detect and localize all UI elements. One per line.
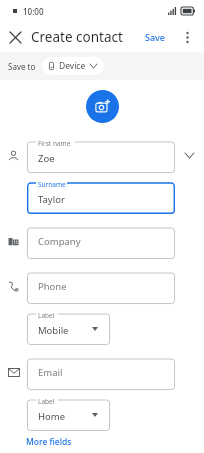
button[interactable]: Save (139, 25, 172, 49)
button[interactable]: Expand name fields (175, 137, 204, 173)
button[interactable]: Add photo (86, 90, 119, 123)
staticText: Create contact (31, 28, 123, 46)
button[interactable]: Close (0, 22, 30, 52)
staticText: Phone (38, 280, 67, 293)
staticText: Save (145, 31, 166, 43)
button[interactable]: More fields (22, 432, 76, 452)
staticText: Email (38, 366, 63, 379)
button[interactable]: Surname (27, 178, 175, 214)
staticText: First name (38, 139, 71, 148)
button[interactable]: Company (27, 223, 175, 259)
staticText: Company (38, 235, 81, 248)
staticText: Surname (38, 180, 66, 189)
staticText: Device (59, 60, 86, 72)
button[interactable]: Label (27, 395, 110, 431)
staticText: Label (38, 311, 55, 320)
button[interactable]: Label (27, 309, 110, 345)
button[interactable]: First name (27, 137, 175, 173)
staticText: Home (38, 410, 66, 423)
staticText: Label (38, 397, 55, 406)
button[interactable]: Device (42, 57, 104, 75)
staticText: More fields (26, 436, 72, 448)
button[interactable]: More options (174, 24, 200, 50)
button[interactable]: Phone (27, 268, 175, 304)
staticText: Zoe (38, 152, 55, 165)
button[interactable]: Email (27, 354, 175, 390)
staticText: Taylor (38, 193, 65, 206)
staticText: 10:00 (23, 6, 44, 17)
staticText: Mobile (38, 324, 69, 337)
staticText: Save to (8, 61, 36, 72)
